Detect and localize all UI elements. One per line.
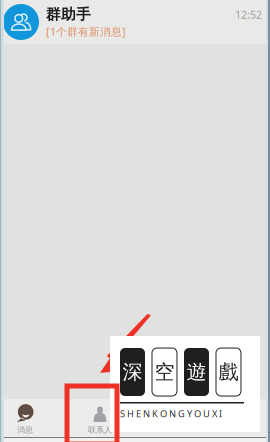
staticText: [1个群有新消息] xyxy=(46,24,126,39)
button[interactable]: 消息 xyxy=(3,399,47,438)
staticText: 遊 xyxy=(186,360,206,384)
button[interactable]: 群助手 xyxy=(3,0,267,44)
staticText: 12:52 xyxy=(235,7,262,22)
staticText: 深 xyxy=(122,360,142,384)
staticText: S H E N K O N G Y O U X I xyxy=(120,407,222,420)
staticText: 联系人 xyxy=(88,425,112,435)
staticText: 群助手 xyxy=(46,5,91,23)
staticText: 消息 xyxy=(17,425,33,435)
staticText: 戲 xyxy=(218,360,238,384)
button[interactable]: 联系人 xyxy=(76,399,124,438)
staticText: 空 xyxy=(154,360,174,384)
